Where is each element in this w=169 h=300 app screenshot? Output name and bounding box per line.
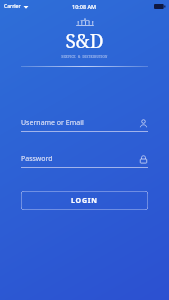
staticText: Password: [21, 154, 53, 164]
button[interactable]: Password: [21, 154, 148, 168]
staticText: Carrier: [4, 3, 21, 10]
button[interactable]: LOGIN: [21, 191, 148, 210]
button[interactable]: Username or Email: [21, 118, 148, 132]
other: Password lock: [139, 155, 148, 164]
staticText: SERVICE & DISTRIBUTION: [61, 55, 108, 59]
staticText: LOGIN: [71, 196, 98, 206]
staticText: S&D: [65, 28, 104, 54]
other: User account: [139, 119, 148, 128]
staticText: Username or Email: [21, 118, 84, 128]
staticText: 10:08 AM: [72, 3, 97, 10]
